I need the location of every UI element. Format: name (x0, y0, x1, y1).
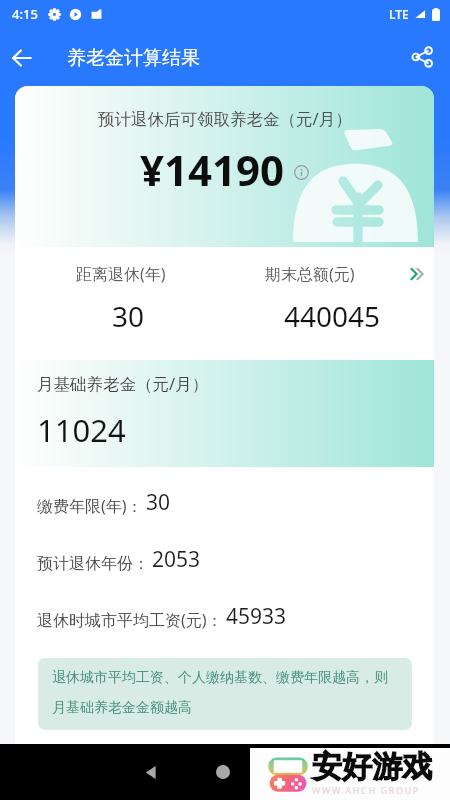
staticText: 预计退休后可领取养老金（元/月） (98, 107, 352, 130)
staticText: 4:15 (12, 5, 38, 23)
staticText: 安好游戏 (312, 748, 432, 786)
staticText: 退休时城市平均工资(元)： (37, 609, 223, 631)
staticText: ¥14190 (140, 141, 285, 198)
staticText: 月基础养老金（元/月） (37, 372, 209, 395)
staticText: 预计退休年份： (37, 554, 149, 574)
staticText: 30 (112, 297, 145, 335)
button[interactable]: Back (130, 752, 170, 792)
staticText: 期末总额(元) (265, 263, 355, 285)
staticText: 养老金计算结果 (67, 46, 200, 70)
staticText: 缴费年限(年)： (37, 495, 143, 517)
staticText: 2053 (152, 545, 201, 574)
staticText: 440045 (284, 297, 381, 335)
staticText: 45933 (226, 602, 287, 631)
button[interactable]: More details (404, 260, 434, 288)
staticText: 距离退休(年) (76, 263, 166, 285)
staticText: WWW.AHCH GROUP (312, 784, 420, 795)
staticText: 30 (146, 488, 171, 517)
staticText: 11024 (37, 409, 126, 451)
button[interactable]: Back (0, 35, 44, 79)
button[interactable]: Share (400, 35, 444, 79)
staticText: LTE (389, 6, 409, 22)
button[interactable]: Home (203, 752, 243, 792)
staticText: 退休城市平均工资、个人缴纳基数、缴费年限越高，则月基础养老金金额越高 (52, 669, 400, 716)
